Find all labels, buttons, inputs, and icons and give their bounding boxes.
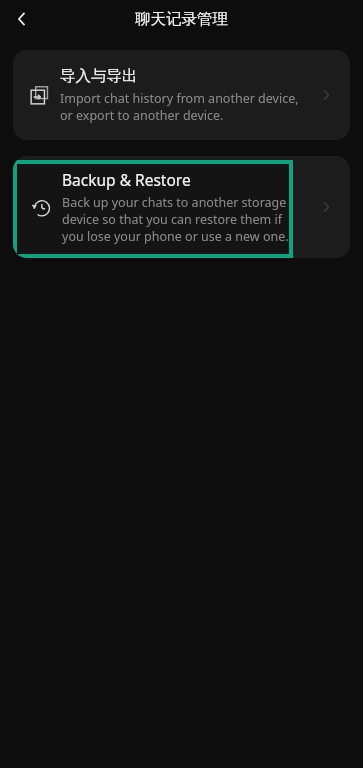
staticText: 聊天记录管理 — [135, 9, 228, 29]
button[interactable]: 导入与导出 — [13, 50, 350, 140]
staticText: 导入与导出 — [60, 66, 138, 86]
staticText: Import chat history from another device,… — [60, 90, 299, 124]
staticText: Back up your chats to another storage de… — [62, 194, 289, 245]
staticText: Backup & Restore — [62, 169, 191, 190]
button[interactable]: Backup & Restore — [13, 156, 350, 258]
button[interactable]: Back — [4, 1, 40, 37]
